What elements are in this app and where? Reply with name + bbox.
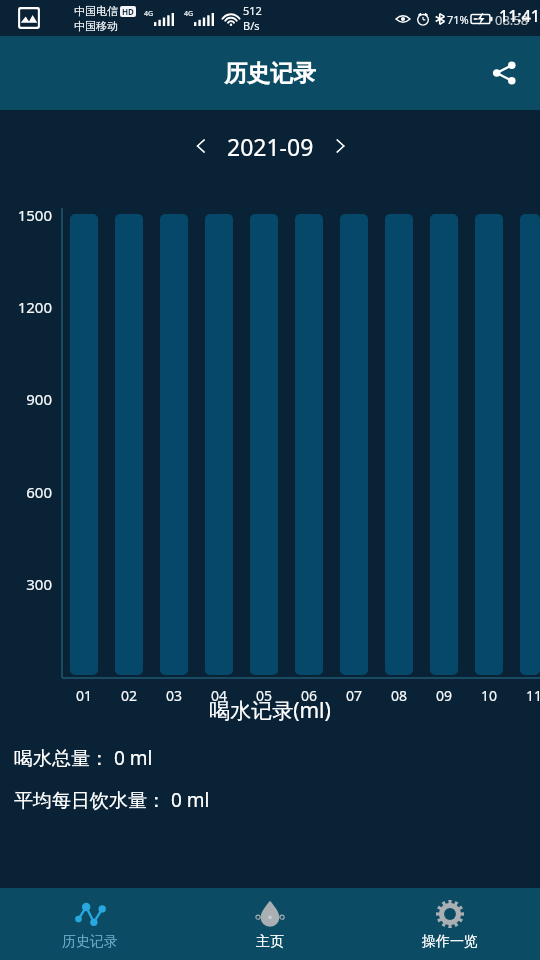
staticText: 中国移动 [74, 19, 118, 33]
staticText: 512 [243, 3, 262, 18]
staticText: 主页 [256, 933, 284, 951]
staticText: 07 [339, 686, 369, 705]
staticText: 11 [519, 686, 540, 705]
staticText: 平均每日饮水量： 0 ml [14, 787, 210, 813]
staticText: 2021-09 [227, 131, 314, 162]
staticText: 02 [114, 686, 144, 705]
staticText: 05 [249, 686, 279, 705]
staticText: 4G [184, 9, 194, 19]
staticText: 03 [159, 686, 189, 705]
staticText: 历史记录 [224, 59, 316, 88]
staticText: 4G [144, 9, 154, 19]
staticText: 600 [0, 482, 52, 502]
button[interactable]: 操作一览 [360, 888, 540, 960]
button[interactable]: 主页 [180, 888, 360, 960]
staticText: 喝水记录(ml) [0, 696, 540, 725]
staticText: B/s [243, 18, 260, 33]
staticText: 08:58 [495, 11, 529, 29]
button[interactable]: Previous month [181, 126, 221, 166]
staticText: 09 [429, 686, 459, 705]
staticText: 10 [474, 686, 504, 705]
staticText: 04 [204, 686, 234, 705]
button[interactable]: Share [480, 49, 528, 97]
staticText: 历史记录 [62, 933, 118, 951]
staticText: 71% [447, 12, 469, 27]
staticText: 中国电信 [74, 4, 118, 18]
staticText: HD [122, 6, 134, 17]
staticText: 11:41 [499, 5, 540, 27]
staticText: 1200 [0, 297, 52, 317]
staticText: 1500 [0, 205, 52, 225]
staticText: 喝水总量： 0 ml [14, 745, 153, 771]
staticText: 900 [0, 389, 52, 409]
staticText: 300 [0, 574, 52, 594]
button[interactable]: 历史记录 [0, 888, 180, 960]
staticText: 01 [69, 686, 99, 705]
staticText: 08 [384, 686, 414, 705]
staticText: 操作一览 [422, 933, 478, 951]
staticText: 06 [294, 686, 324, 705]
button[interactable]: Next month [320, 126, 360, 166]
